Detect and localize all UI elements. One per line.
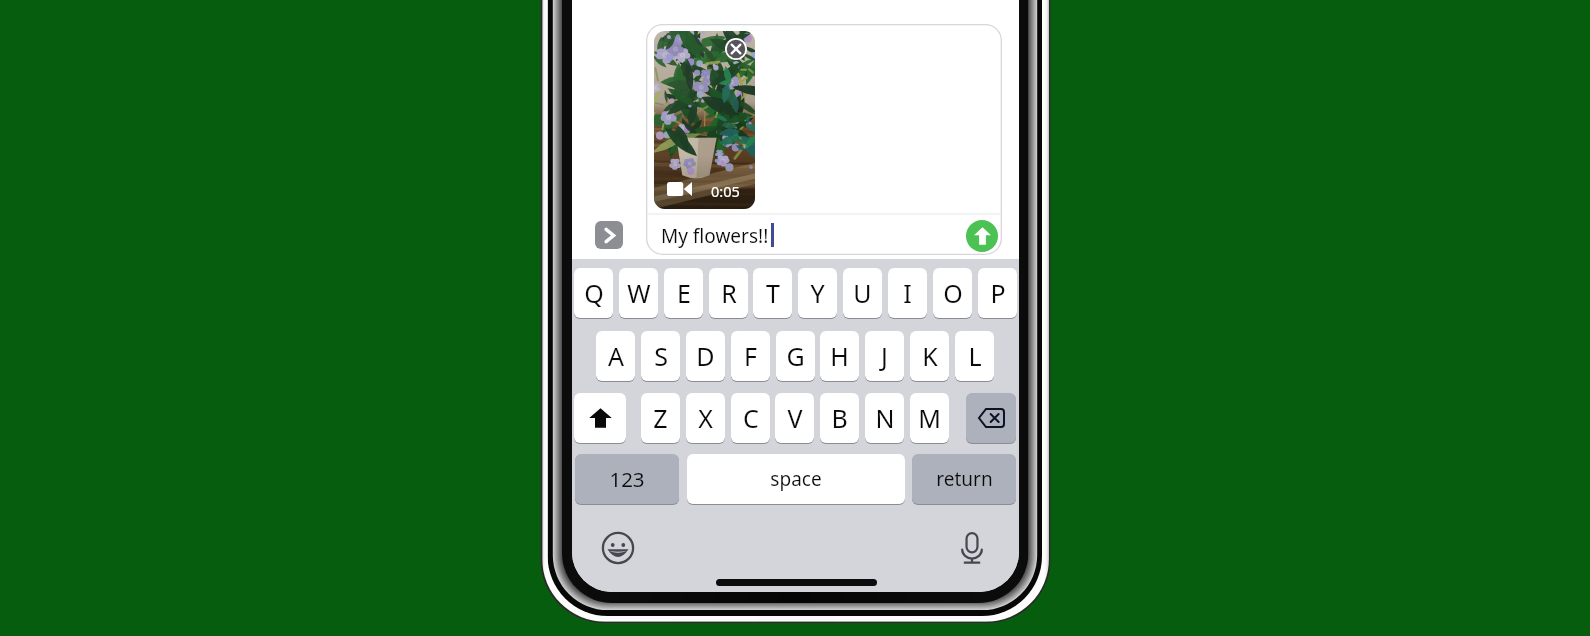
button[interactable]: Send [966, 220, 998, 252]
button[interactable]: X [686, 393, 725, 443]
staticText: 0:05 [711, 181, 740, 201]
staticText: E [677, 276, 691, 310]
staticText: R [721, 276, 737, 310]
button[interactable]: N [865, 393, 904, 443]
staticText: H [830, 339, 849, 373]
staticText: F [744, 339, 757, 373]
staticText: K [922, 339, 938, 373]
button[interactable]: H [820, 331, 859, 381]
button[interactable]: Z [641, 393, 680, 443]
staticText: G [786, 339, 805, 373]
button[interactable]: W [619, 268, 658, 318]
button[interactable]: R [709, 268, 748, 318]
staticText: N [875, 401, 895, 435]
button[interactable]: V [775, 393, 814, 443]
button[interactable]: A [596, 331, 635, 381]
button[interactable]: S [641, 331, 680, 381]
staticText: return [936, 466, 993, 492]
button[interactable]: Shift [574, 393, 626, 443]
button[interactable]: L [955, 331, 994, 381]
button[interactable]: Y [798, 268, 837, 318]
staticText: B [831, 401, 848, 435]
button[interactable]: return [912, 454, 1016, 504]
button[interactable]: I [888, 268, 927, 318]
button[interactable]: F [731, 331, 770, 381]
button[interactable]: Emoji keyboard [602, 532, 634, 564]
staticText: M [918, 401, 941, 435]
button[interactable]: C [731, 393, 770, 443]
staticText: L [968, 339, 982, 373]
staticText: T [766, 276, 780, 310]
button[interactable]: space [687, 454, 905, 504]
button[interactable]: K [910, 331, 949, 381]
staticText: J [881, 339, 888, 373]
button[interactable]: T [753, 268, 792, 318]
button[interactable]: Q [574, 268, 613, 318]
staticText: U [853, 276, 872, 310]
staticText: D [696, 339, 715, 373]
button[interactable]: B [820, 393, 859, 443]
button[interactable]: O [933, 268, 972, 318]
button[interactable]: G [776, 331, 815, 381]
button[interactable]: U [843, 268, 882, 318]
button[interactable]: Backspace [966, 393, 1016, 443]
staticText: Q [584, 276, 604, 310]
staticText: I [903, 276, 912, 310]
staticText: My flowers!! [661, 223, 769, 249]
button[interactable]: M [910, 393, 949, 443]
button[interactable]: Dictation [958, 532, 986, 564]
staticText: 123 [609, 465, 645, 493]
staticText: Y [810, 276, 825, 310]
staticText: X [698, 401, 713, 435]
staticText: O [943, 276, 963, 310]
staticText: P [990, 276, 1006, 310]
staticText: V [787, 401, 803, 435]
button[interactable]: E [664, 268, 703, 318]
button[interactable]: 123 [575, 454, 679, 504]
button[interactable]: Remove attachment [725, 38, 747, 60]
staticText: space [770, 466, 822, 492]
button[interactable]: D [686, 331, 725, 381]
button[interactable]: Show more options [595, 221, 623, 249]
staticText: A [608, 339, 624, 373]
staticText: C [743, 401, 759, 435]
staticText: Z [653, 401, 668, 435]
button[interactable]: J [865, 331, 904, 381]
staticText: W [627, 276, 651, 310]
button[interactable]: P [978, 268, 1017, 318]
staticText: S [654, 339, 668, 373]
